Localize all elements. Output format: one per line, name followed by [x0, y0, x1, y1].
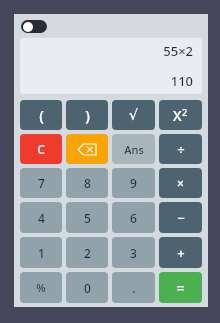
staticText: 110 — [170, 72, 193, 90]
staticText: ( — [39, 105, 44, 125]
staticText: 2 — [182, 106, 188, 118]
button[interactable]: Toggle mode — [21, 20, 47, 33]
staticText: 2 — [84, 245, 91, 261]
staticText: ) — [85, 105, 90, 125]
button[interactable]: . — [112, 272, 155, 303]
button[interactable]: − — [159, 202, 202, 233]
button[interactable]: 1 — [20, 237, 62, 268]
staticText: √ — [129, 107, 138, 123]
staticText: 55×2 — [163, 42, 193, 60]
button[interactable]: 6 — [112, 202, 155, 233]
staticText: 6 — [130, 210, 137, 226]
staticText: . — [132, 280, 136, 296]
staticText: 4 — [38, 210, 45, 226]
staticText: ÷ — [177, 140, 185, 158]
staticText: 9 — [130, 175, 137, 191]
button[interactable]: 0 — [66, 272, 108, 303]
button[interactable]: ) — [66, 100, 108, 130]
staticText: % — [36, 280, 46, 295]
button[interactable]: Square — [159, 100, 202, 130]
button[interactable]: 3 — [112, 237, 155, 268]
button[interactable]: % — [20, 272, 62, 303]
staticText: X — [173, 106, 182, 125]
staticText: × — [177, 175, 184, 191]
button[interactable]: 9 — [112, 168, 155, 198]
staticText: 3 — [130, 245, 137, 261]
staticText: − — [177, 209, 185, 227]
staticText: 1 — [38, 245, 45, 261]
button[interactable]: √ — [112, 100, 155, 130]
staticText: + — [177, 244, 185, 262]
button[interactable]: 2 — [66, 237, 108, 268]
staticText: C — [37, 141, 45, 157]
button[interactable]: 4 — [20, 202, 62, 233]
button[interactable]: 7 — [20, 168, 62, 198]
button[interactable]: + — [159, 237, 202, 268]
staticText: 8 — [84, 175, 91, 191]
staticText: Ans — [124, 142, 144, 157]
staticText: 7 — [38, 175, 45, 191]
staticText: = — [176, 278, 185, 297]
button[interactable]: 8 — [66, 168, 108, 198]
button[interactable]: = — [159, 272, 202, 303]
staticText: 0 — [84, 280, 91, 296]
button[interactable]: ( — [20, 100, 62, 130]
button[interactable]: ÷ — [159, 134, 202, 164]
button[interactable]: 5 — [66, 202, 108, 233]
button[interactable]: C — [20, 134, 62, 164]
button[interactable]: Backspace — [66, 134, 108, 164]
button[interactable]: × — [159, 168, 202, 198]
button[interactable]: Ans — [112, 134, 155, 164]
staticText: 5 — [84, 210, 91, 226]
